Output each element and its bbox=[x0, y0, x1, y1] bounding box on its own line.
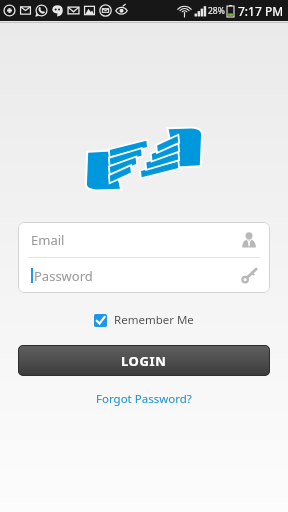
staticText: 28% bbox=[208, 5, 225, 17]
staticText: Remember Me bbox=[114, 312, 194, 328]
button[interactable]: Forgot Password? bbox=[88, 388, 200, 410]
button[interactable]: LOGIN bbox=[18, 345, 270, 376]
button[interactable]: Remember Me bbox=[88, 309, 200, 331]
button[interactable]: Password field bbox=[18, 258, 270, 293]
staticText: Forgot Password? bbox=[96, 391, 192, 407]
staticText: 7:17 PM bbox=[238, 3, 284, 19]
staticText: Password bbox=[34, 267, 93, 285]
staticText: LOGIN bbox=[121, 352, 167, 370]
staticText: Email bbox=[31, 231, 65, 249]
button[interactable]: Email field bbox=[18, 222, 270, 257]
